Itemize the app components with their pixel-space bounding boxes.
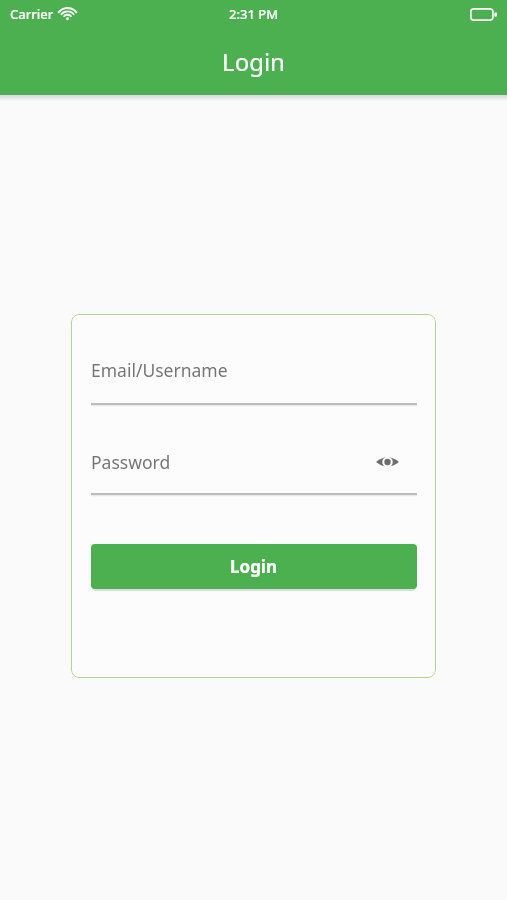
staticText: Email/Username xyxy=(91,358,228,382)
staticText: Password xyxy=(91,450,171,474)
staticText: Carrier xyxy=(10,5,54,23)
button[interactable]: Login xyxy=(91,544,417,589)
button[interactable]: Show password xyxy=(371,446,403,478)
staticText: Login xyxy=(0,45,507,78)
staticText: Login xyxy=(230,555,278,578)
staticText: 2:31 PM xyxy=(229,5,279,23)
